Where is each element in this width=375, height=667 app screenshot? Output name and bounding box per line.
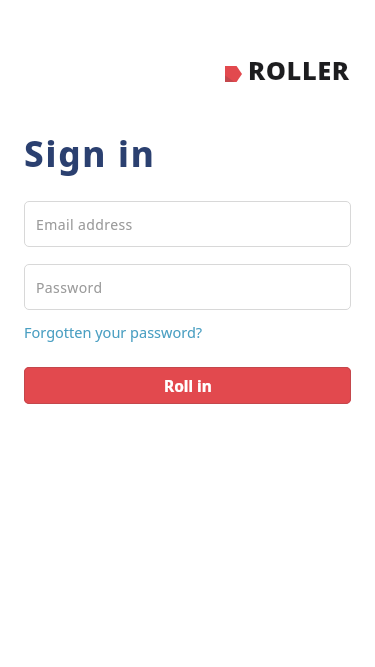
button[interactable]: Password [24, 264, 351, 310]
staticText: Email address [36, 215, 133, 234]
button[interactable]: Forgotten your password? [24, 322, 203, 342]
button[interactable]: Email address [24, 201, 351, 247]
staticText: Roll in [164, 375, 212, 396]
staticText: Sign in [24, 130, 156, 178]
staticText: ROLLER [248, 53, 350, 88]
button[interactable]: Roll in [24, 367, 351, 404]
staticText: Forgotten your password? [24, 322, 203, 342]
staticText: Password [36, 278, 103, 297]
